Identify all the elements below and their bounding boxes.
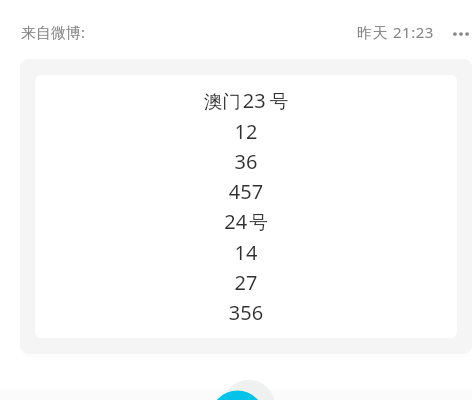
button[interactable]: Profile avatar	[216, 376, 276, 400]
staticText: 来自微博:	[21, 22, 86, 42]
staticText: 澳门 23 号 12 36 457 24 号 14 27 356	[35, 84, 457, 326]
button[interactable]: 昨天 21:23	[357, 19, 434, 45]
staticText: 昨天 21:23	[357, 22, 434, 42]
button[interactable]: 来自微博:	[21, 19, 86, 45]
button[interactable]: 澳门 23 号 12 36 457 24 号 14 27 356	[20, 59, 472, 354]
button[interactable]: More options	[447, 20, 472, 48]
